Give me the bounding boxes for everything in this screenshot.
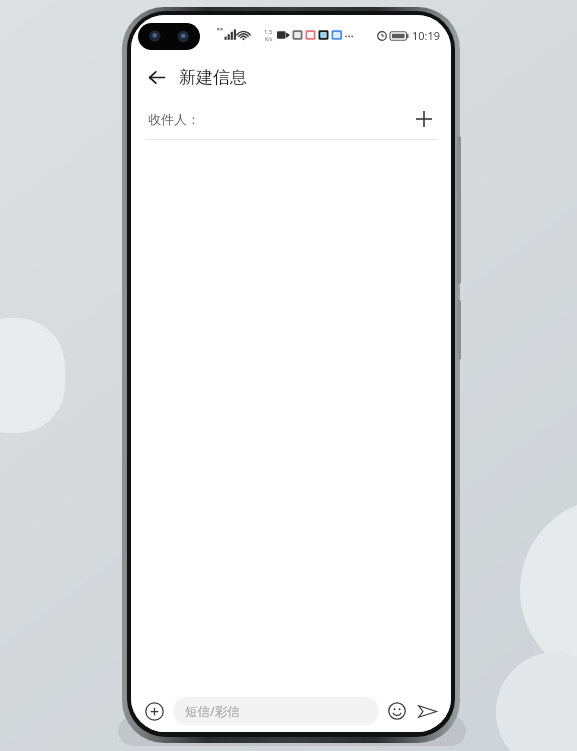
staticText: 收件人：	[148, 111, 200, 127]
button[interactable]: Add attachment	[139, 696, 169, 726]
staticText: 10:19	[412, 28, 441, 43]
staticText: 新建信息	[179, 67, 247, 88]
button[interactable]: Send	[412, 696, 442, 726]
staticText: K/s	[265, 36, 273, 43]
button[interactable]: Add recipient	[409, 104, 439, 134]
button[interactable]: 短信/彩信	[173, 697, 379, 725]
button[interactable]: Back	[139, 60, 173, 94]
button[interactable]: Emoji	[382, 696, 412, 726]
staticText: 短信/彩信	[185, 703, 240, 720]
staticText: 1.5	[264, 28, 273, 36]
